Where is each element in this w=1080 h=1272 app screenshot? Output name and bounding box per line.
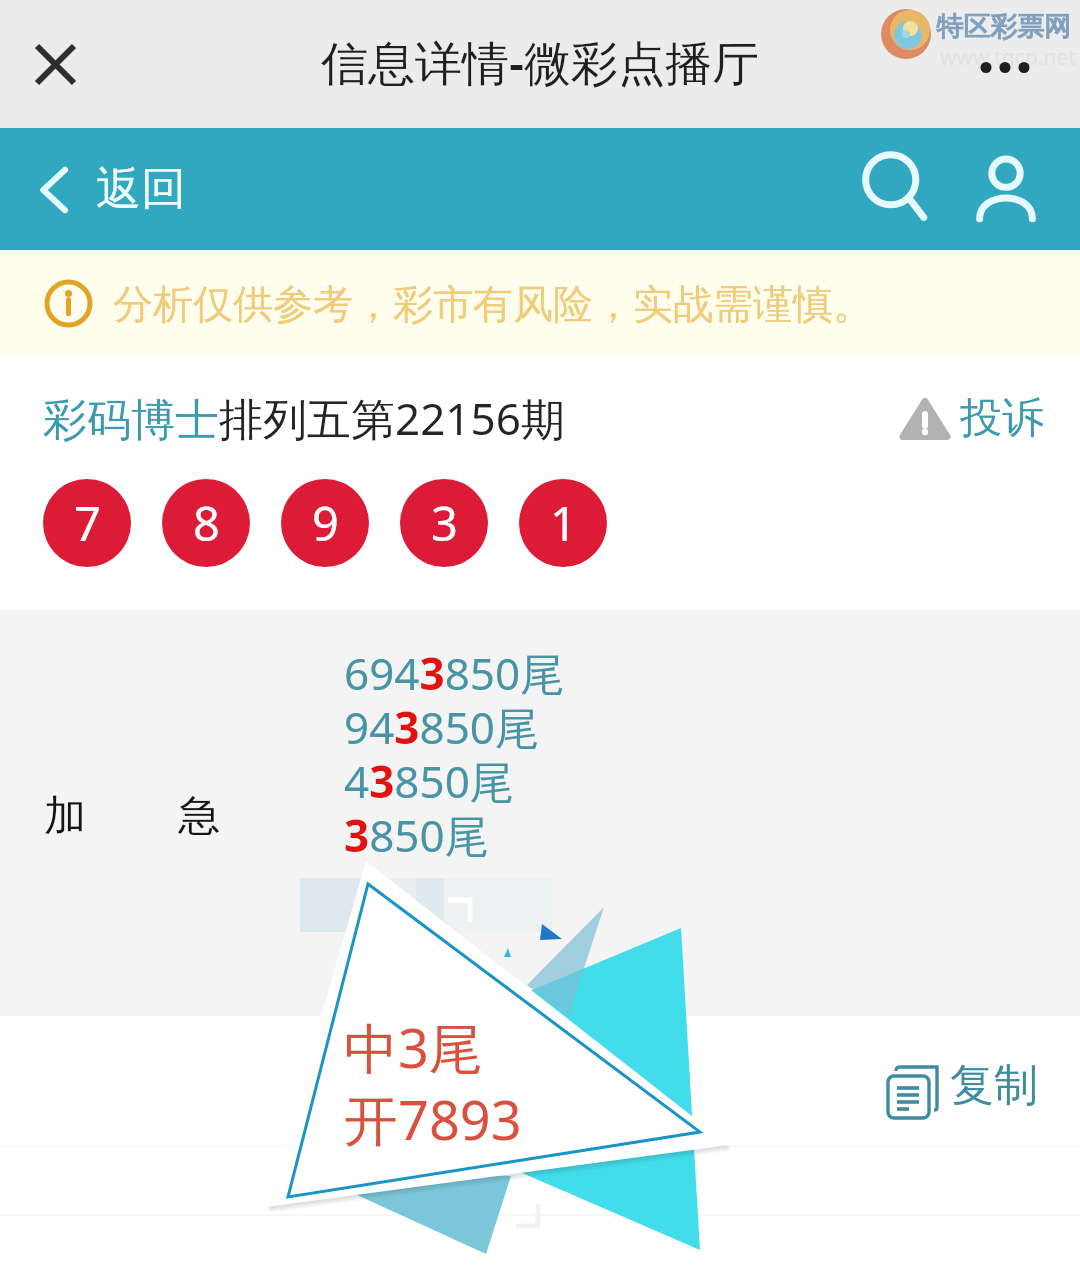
button[interactable]: Search (850, 143, 942, 235)
staticText: 投诉 (960, 392, 1044, 445)
button[interactable]: 复制 (887, 1058, 1038, 1113)
staticText: 3 (431, 491, 458, 555)
staticText: 8 (193, 491, 220, 555)
button[interactable]: 投诉 (900, 392, 1044, 445)
staticText: 加 (44, 790, 86, 843)
staticText: 信息详情-微彩点播厅 (321, 30, 760, 94)
staticText: 急 (178, 790, 220, 843)
staticText: 1 (550, 491, 577, 555)
staticText: 复制 (950, 1058, 1038, 1113)
staticText: 特区彩票网 (936, 10, 1071, 44)
staticText: 9 (312, 491, 339, 555)
staticText: 分析仅供参考，彩市有风险，实战需谨慎。 (113, 279, 873, 329)
staticText: 中3尾 开7893 (344, 1010, 522, 1156)
staticText: 彩码博士排列五第22156期 (43, 388, 565, 448)
staticText: www.tqcp.net (940, 43, 1076, 72)
button[interactable]: Close (18, 27, 92, 101)
button[interactable]: 返回 (40, 161, 186, 218)
staticText: 返回 (96, 161, 186, 218)
staticText: 7 (74, 491, 101, 555)
staticText: 6943850尾 943850尾 43850尾 3850尾 (344, 643, 565, 865)
button[interactable]: Profile (960, 143, 1052, 235)
